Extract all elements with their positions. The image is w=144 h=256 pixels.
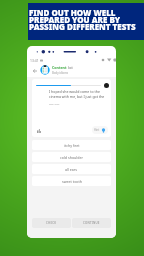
staticText: Hint (94, 128, 100, 132)
staticText: all ears (65, 167, 78, 172)
button[interactable]: sweet tooth (32, 176, 111, 186)
staticText: 13:41 (30, 58, 39, 63)
button[interactable]: all ears (32, 164, 111, 174)
button[interactable]: More (104, 83, 109, 88)
staticText: CONTINUE (83, 221, 100, 225)
staticText: Content (52, 65, 67, 70)
staticText: CHECK (46, 221, 57, 225)
button[interactable]: Hint (92, 126, 108, 134)
button[interactable]: CONTINUE (72, 218, 111, 228)
button[interactable]: CHECK (32, 218, 71, 228)
button[interactable]: itchy feet (32, 140, 111, 150)
staticText: bot (68, 66, 73, 70)
staticText: itchy feet (64, 143, 80, 148)
staticText: I hoped she would come to the cinema wit… (49, 89, 105, 105)
staticText: cold shoulder (60, 155, 83, 160)
staticText: Body idioms (52, 71, 69, 75)
button[interactable]: cold shoulder (32, 152, 111, 162)
staticText: sweet tooth (62, 179, 82, 184)
staticText: FIND OUT HOW WELL PREPARED YOU ARE BY PA… (29, 7, 136, 32)
button[interactable]: Back (30, 66, 39, 75)
